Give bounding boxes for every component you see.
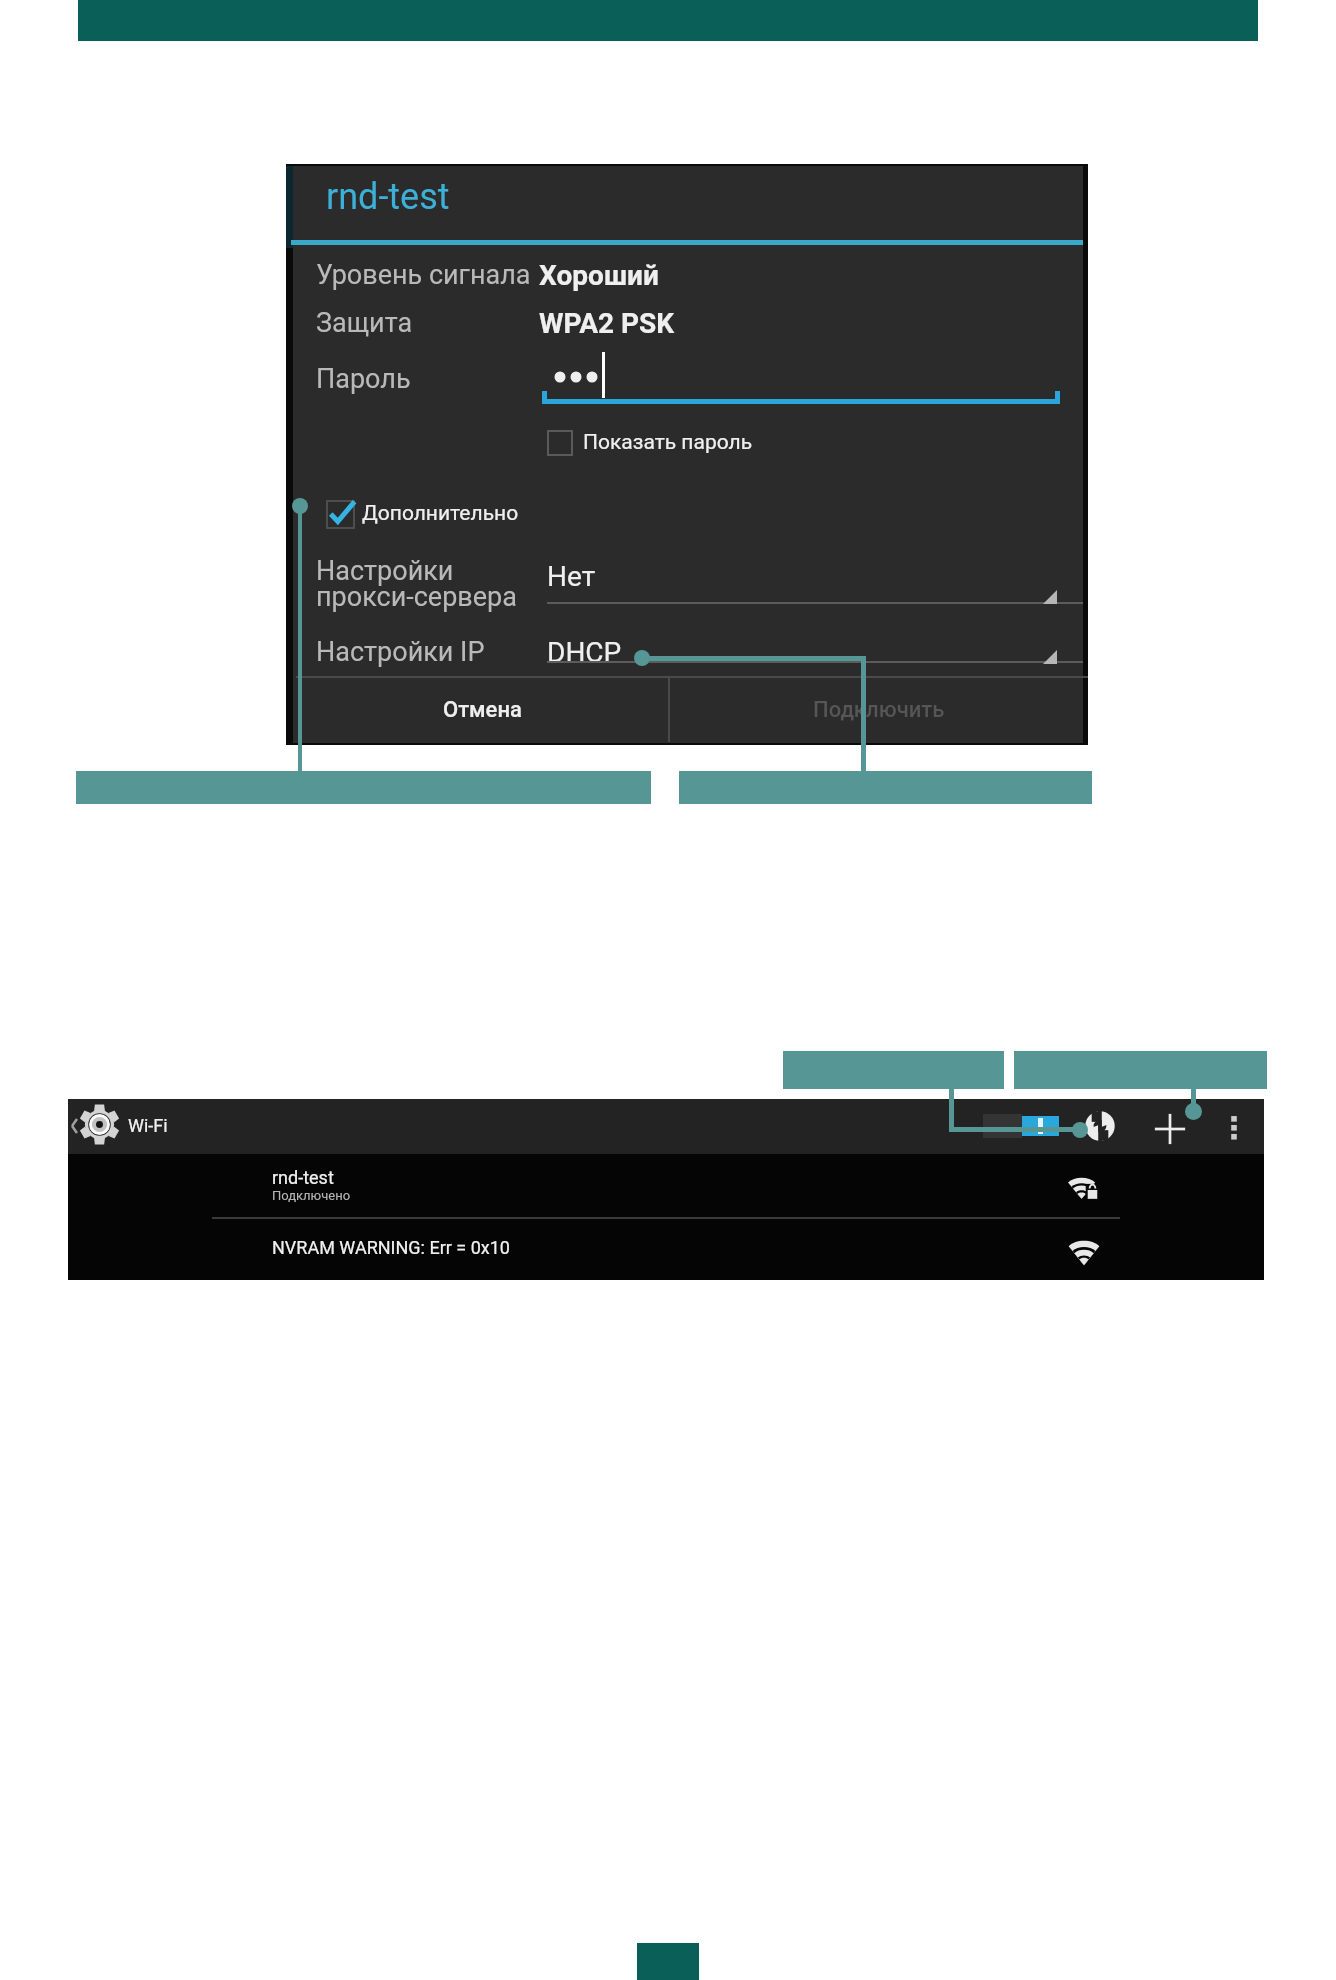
staticText: Защита: [316, 307, 413, 339]
staticText: Уровень сигнала: [316, 259, 531, 291]
staticText: Хороший: [539, 259, 659, 292]
button[interactable]: Back: [71, 1119, 78, 1133]
button[interactable]: NVRAM WARNING: Err = 0x10: [68, 1219, 1264, 1280]
button[interactable]: rnd-test: [68, 1154, 1264, 1217]
staticText: Wi-Fi: [128, 1115, 168, 1136]
staticText: WPA2 PSK: [539, 307, 675, 340]
staticText: Подключить: [813, 697, 945, 723]
staticText: DHCP: [547, 636, 622, 669]
button[interactable]: More options: [1220, 1111, 1248, 1139]
button[interactable]: Scan: [1084, 1110, 1116, 1142]
button[interactable]: DHCP: [547, 636, 1085, 676]
staticText: Настройки: [316, 555, 454, 587]
button[interactable]: Wi-Fi on/off: [980, 1110, 1060, 1146]
staticText: Отмена: [443, 697, 522, 723]
staticText: прокси-сервера: [316, 581, 517, 613]
staticText: Показать пароль: [583, 430, 753, 455]
button[interactable]: Показать пароль: [544, 426, 804, 464]
button[interactable]: Нет: [547, 558, 1085, 606]
button[interactable]: Дополнительно: [322, 496, 552, 536]
staticText: Настройки IP: [316, 636, 485, 668]
staticText: Пароль: [316, 363, 411, 395]
staticText: Дополнительно: [362, 501, 519, 526]
staticText: rnd-test: [326, 176, 450, 218]
button[interactable]: Add network: [1152, 1111, 1188, 1147]
button[interactable]: Подключить: [670, 678, 1088, 742]
staticText: NVRAM WARNING: Err = 0x10: [272, 1237, 510, 1258]
staticText: Подключено: [272, 1188, 351, 1203]
button[interactable]: Отмена: [296, 678, 668, 742]
staticText: Нет: [547, 560, 596, 593]
staticText: rnd-test: [272, 1167, 334, 1188]
